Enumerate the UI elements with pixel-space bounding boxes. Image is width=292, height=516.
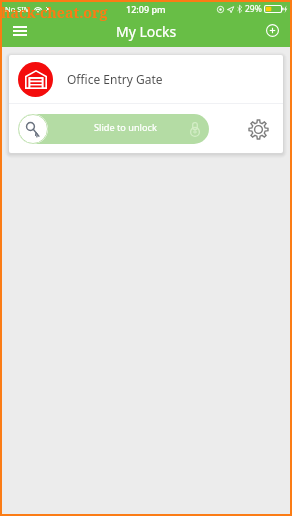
staticText: 12:09 pm (126, 3, 166, 15)
staticText: My Locks (116, 22, 177, 41)
staticText: Slide to unlock (94, 121, 157, 134)
button[interactable]: Slide to unlock (18, 114, 209, 144)
button[interactable]: Menu (2, 15, 38, 46)
staticText: 29% (245, 3, 262, 15)
button[interactable]: Add lock (254, 15, 290, 46)
staticText: Office Entry Gate (67, 71, 163, 87)
button[interactable]: Settings (243, 114, 273, 144)
staticText: No SIM (5, 4, 31, 14)
button[interactable]: Office Entry Gate (9, 55, 283, 103)
staticText: hack-cheat.org (1, 3, 108, 22)
